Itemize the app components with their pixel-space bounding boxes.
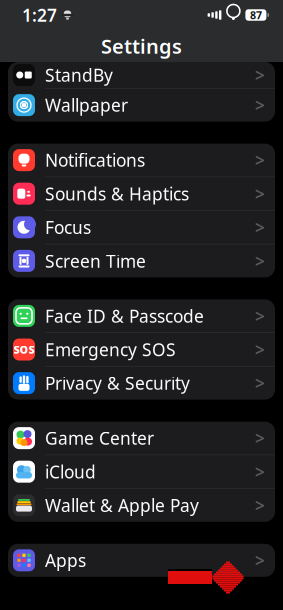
staticText: 1:27 <box>22 3 57 26</box>
staticText: Wallet & Apple Pay <box>45 494 199 517</box>
staticText: > <box>255 494 265 517</box>
staticText: 87 <box>250 8 262 22</box>
staticText: > <box>255 216 265 239</box>
button[interactable]: SOS <box>8 333 275 367</box>
staticText: Focus <box>45 216 91 239</box>
button[interactable]: Notifications <box>8 144 275 177</box>
staticText: > <box>255 63 265 86</box>
button[interactable]: Focus <box>8 211 275 244</box>
staticText: > <box>255 149 265 172</box>
staticText: Settings <box>101 33 182 59</box>
staticText: > <box>255 460 265 483</box>
staticText: Screen Time <box>45 249 146 272</box>
staticText: > <box>255 182 265 205</box>
staticText: > <box>255 304 265 327</box>
staticText: > <box>255 427 265 450</box>
staticText: Emergency SOS <box>45 338 176 361</box>
staticText: Face ID & Passcode <box>45 304 204 327</box>
button[interactable]: Sounds & Haptics <box>8 177 275 211</box>
staticText: Sounds & Haptics <box>45 182 189 205</box>
button[interactable]: Privacy & Security <box>8 367 275 400</box>
button[interactable]: Screen Time <box>8 244 275 277</box>
staticText: > <box>255 249 265 272</box>
staticText: > <box>255 338 265 361</box>
staticText: > <box>255 94 265 117</box>
button[interactable]: iCloud <box>8 455 275 489</box>
staticText: Notifications <box>45 149 145 172</box>
button[interactable]: Game Center <box>8 422 275 455</box>
staticText: SOS <box>13 342 34 357</box>
staticText: StandBy <box>45 63 113 86</box>
button[interactable]: Wallpaper <box>8 89 275 122</box>
staticText: Privacy & Security <box>45 372 190 395</box>
staticText: > <box>255 549 265 572</box>
staticText: iCloud <box>45 460 96 483</box>
staticText: Apps <box>45 549 86 572</box>
staticText: Game Center <box>45 427 154 450</box>
button[interactable]: StandBy <box>8 62 275 89</box>
button[interactable]: Apps <box>8 544 275 577</box>
staticText: > <box>255 372 265 395</box>
button[interactable]: Wallet & Apple Pay <box>8 489 275 522</box>
button[interactable]: Face ID & Passcode <box>8 299 275 333</box>
staticText: Wallpaper <box>45 94 128 117</box>
